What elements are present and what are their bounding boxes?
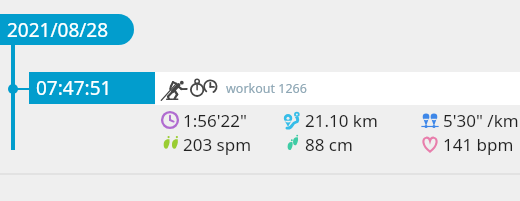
button[interactable]: 1:56'22"	[161, 109, 247, 131]
staticText: 5'30" /km	[443, 109, 519, 131]
staticText: 07:47:51	[36, 75, 112, 101]
staticText: workout 1266	[226, 80, 307, 97]
button[interactable]: 141 bpm	[421, 133, 514, 155]
other: Running	[161, 79, 187, 101]
staticText: 1:56'22"	[183, 109, 247, 131]
button[interactable]: 5'30" /km	[421, 109, 519, 131]
other: Duration	[189, 78, 218, 97]
staticText: 21.10 km	[305, 109, 378, 131]
button[interactable]: Running	[161, 72, 307, 105]
button[interactable]: 07:47:51	[29, 72, 155, 104]
button[interactable]: 21.10 km	[283, 109, 378, 131]
staticText: 88 cm	[305, 133, 353, 155]
staticText: 203 spm	[183, 133, 252, 155]
button[interactable]: 88 cm	[283, 133, 353, 155]
button[interactable]: 2021/08/28	[0, 14, 134, 45]
staticText: 2021/08/28	[7, 17, 109, 43]
staticText: 141 bpm	[443, 133, 514, 155]
button[interactable]: 203 spm	[161, 133, 252, 155]
